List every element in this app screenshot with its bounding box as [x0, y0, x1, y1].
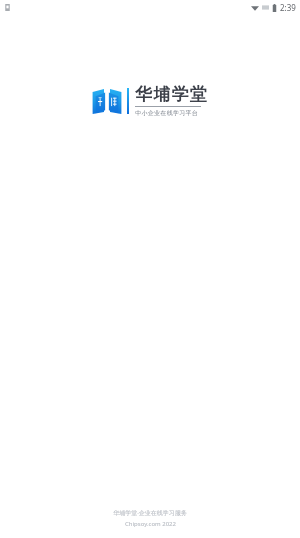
staticText: 华埔学堂·企业在线学习服务: [113, 509, 187, 517]
staticText: 2:39: [280, 2, 296, 13]
staticText: 华埔学堂: [135, 84, 208, 105]
other: 华埔学堂 logo: [92, 86, 122, 116]
staticText: Chipsoy.com 2022: [125, 520, 176, 528]
button[interactable]: 华埔学堂 logo: [92, 84, 208, 117]
staticText: 中小企业在线学习平台: [135, 109, 198, 117]
